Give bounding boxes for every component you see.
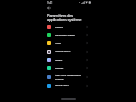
staticText: Appareil photo xyxy=(55,50,86,53)
button[interactable]: Xiaomi Cloud xyxy=(43,81,93,90)
staticText: Paramètres des applications système xyxy=(47,13,82,23)
staticText: Shazam xyxy=(55,26,86,29)
button[interactable]: Shazam xyxy=(43,23,93,31)
staticText: Galerie xyxy=(55,59,86,62)
staticText: Paramètres d'appel xyxy=(55,34,86,37)
staticText: Xiaomi Cloud xyxy=(55,84,86,87)
button[interactable]: Galerie xyxy=(43,56,93,64)
button[interactable]: Appareil photo xyxy=(43,47,93,56)
staticText: Sécurité xyxy=(55,67,86,70)
button[interactable]: Mise à jour d'applications système xyxy=(43,72,93,81)
button[interactable]: Notes xyxy=(43,39,93,47)
staticText: 9:41 xyxy=(47,1,53,5)
staticText: Mise à jour d'applications système xyxy=(55,74,86,80)
button[interactable]: Sécurité xyxy=(43,64,93,72)
staticText: Notes xyxy=(55,42,86,45)
button[interactable]: Back xyxy=(46,5,51,10)
button[interactable]: Paramètres d'appel xyxy=(43,31,93,39)
